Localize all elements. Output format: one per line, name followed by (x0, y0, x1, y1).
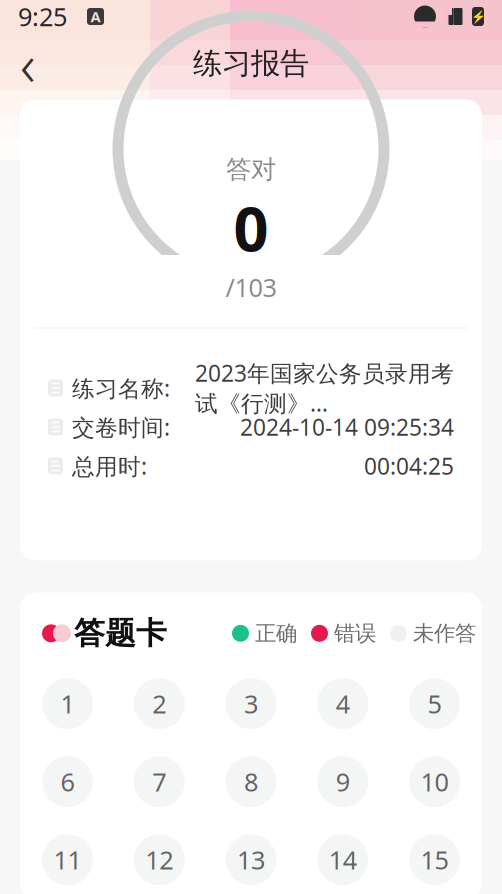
staticText: 8 (244, 765, 258, 798)
button[interactable]: 3 (225, 678, 276, 729)
staticText: 9 (336, 765, 350, 798)
staticText: 交卷时间: (72, 412, 170, 442)
button[interactable]: 13 (225, 834, 276, 885)
button[interactable]: 14 (317, 834, 368, 885)
button[interactable]: 12 (134, 834, 185, 885)
staticText: /103 (225, 270, 276, 304)
staticText: 13 (237, 843, 265, 876)
staticText: 0 (233, 187, 268, 268)
button[interactable]: 11 (42, 834, 93, 885)
staticText: 00:04:25 (364, 451, 454, 481)
button[interactable]: Back (0, 39, 56, 87)
staticText: 10 (420, 765, 448, 798)
staticText: 5 (427, 687, 441, 720)
staticText: 2 (152, 687, 166, 720)
button[interactable]: 10 (409, 756, 460, 807)
staticText: 未作答 (413, 620, 476, 646)
button[interactable]: 5 (409, 678, 460, 729)
staticText: ⚡ (470, 10, 485, 23)
staticText: 6 (60, 765, 74, 798)
staticText: 4 (336, 687, 350, 720)
button[interactable]: 8 (225, 756, 276, 807)
staticText: A (90, 7, 100, 26)
staticText: 1 (60, 687, 74, 720)
staticText: 总用时: (72, 451, 147, 481)
staticText: 9:25 (18, 0, 67, 33)
staticText: 2024-10-14 09:25:34 (240, 412, 454, 442)
staticText: 答对 (226, 154, 276, 185)
staticText: 15 (420, 843, 448, 876)
staticText: 2023年国家公务员录用考试《行测》… (195, 358, 454, 418)
button[interactable]: 2 (134, 678, 185, 729)
staticText: 3 (244, 687, 258, 720)
staticText: 12 (145, 843, 173, 876)
staticText: 11 (53, 843, 81, 876)
staticText: 答题卡 (74, 614, 167, 652)
staticText: 练习报告 (193, 45, 309, 81)
button[interactable]: 4 (317, 678, 368, 729)
staticText: 正确 (255, 620, 297, 646)
staticText: 7 (152, 765, 166, 798)
button[interactable]: 9 (317, 756, 368, 807)
staticText: ‹ (20, 24, 36, 102)
button[interactable]: 1 (42, 678, 93, 729)
button[interactable]: 7 (134, 756, 185, 807)
button[interactable]: 15 (409, 834, 460, 885)
button[interactable]: 6 (42, 756, 93, 807)
staticText: 练习名称: (72, 373, 170, 403)
staticText: 14 (329, 843, 357, 876)
staticText: 错误 (334, 620, 376, 646)
